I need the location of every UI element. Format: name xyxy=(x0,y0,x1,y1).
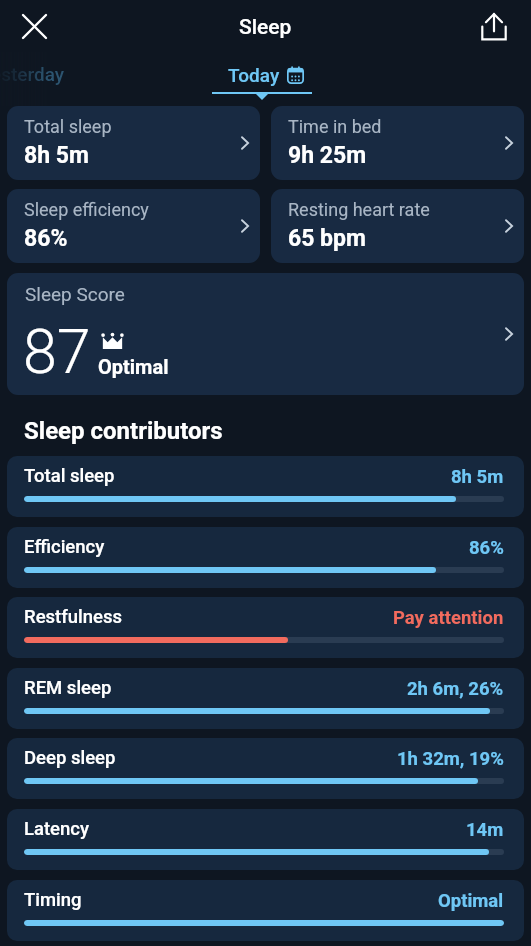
staticText: Optimal xyxy=(98,355,169,378)
staticText: Latency xyxy=(24,818,90,840)
staticText: esterday xyxy=(0,63,65,85)
button[interactable]: Latency xyxy=(7,809,524,870)
staticText: Time in bed xyxy=(288,116,382,137)
button[interactable]: Restfulness xyxy=(7,597,524,658)
staticText: Pay attention xyxy=(393,607,504,629)
button[interactable]: REM sleep xyxy=(7,668,524,729)
staticText: 1h 32m, 19% xyxy=(397,748,504,770)
staticText: 14m xyxy=(466,819,504,841)
button[interactable]: Timing xyxy=(7,880,524,941)
button[interactable]: Share xyxy=(472,4,516,48)
staticText: Total sleep xyxy=(24,465,115,487)
staticText: Total sleep xyxy=(24,116,112,137)
button[interactable]: Total sleep xyxy=(7,106,260,180)
staticText: 8h 5m xyxy=(24,142,89,169)
button[interactable]: Efficiency xyxy=(7,527,524,588)
staticText: 86% xyxy=(24,225,68,252)
staticText: 86% xyxy=(469,537,504,559)
staticText: 2h 6m, 26% xyxy=(407,678,504,700)
staticText: 9h 25m xyxy=(288,142,367,169)
staticText: 87 xyxy=(23,316,91,387)
button[interactable]: Deep sleep xyxy=(7,738,524,799)
button[interactable]: Total sleep xyxy=(7,456,524,517)
staticText: Sleep xyxy=(239,15,292,40)
staticText: Sleep Score xyxy=(25,283,125,305)
staticText: Today xyxy=(228,64,280,86)
staticText: Sleep efficiency xyxy=(24,199,149,220)
staticText: Timing xyxy=(24,889,82,911)
staticText: Resting heart rate xyxy=(288,199,430,220)
staticText: 65 bpm xyxy=(288,225,366,252)
staticText: 8h 5m xyxy=(451,466,504,488)
button[interactable]: Sleep efficiency xyxy=(7,189,260,263)
staticText: Sleep contributors xyxy=(24,417,223,445)
button[interactable]: Sleep Score xyxy=(7,273,524,395)
button[interactable]: Close xyxy=(12,4,56,48)
button[interactable]: Time in bed xyxy=(271,106,524,180)
staticText: Restfulness xyxy=(24,606,123,628)
staticText: Optimal xyxy=(438,890,504,912)
staticText: Efficiency xyxy=(24,536,105,558)
staticText: Deep sleep xyxy=(24,747,116,769)
button[interactable]: Resting heart rate xyxy=(271,189,524,263)
button[interactable]: Today xyxy=(228,64,304,86)
staticText: REM sleep xyxy=(24,677,112,699)
